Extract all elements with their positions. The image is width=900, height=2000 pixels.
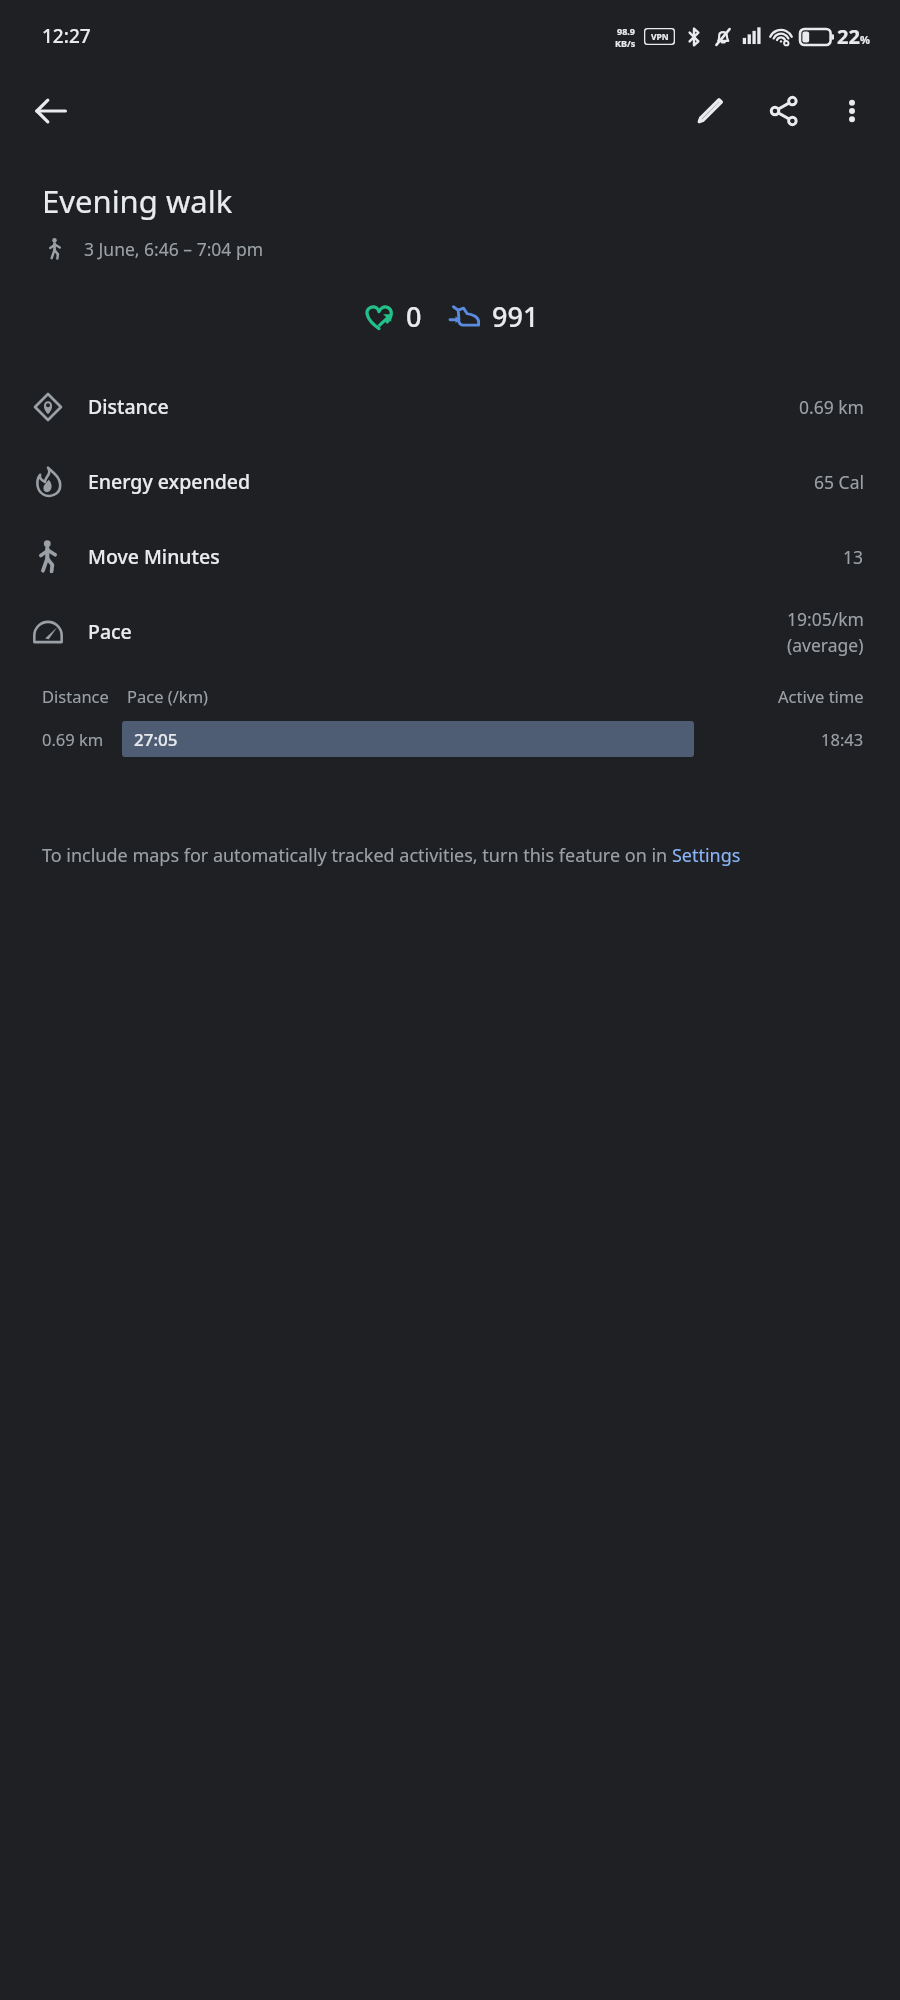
staticText: 0.69 km xyxy=(799,395,864,419)
staticText: Pace xyxy=(88,618,132,645)
staticText: 98.9 xyxy=(617,25,635,37)
button[interactable]: Distance xyxy=(0,369,900,444)
button[interactable]: Pace xyxy=(0,594,900,669)
staticText: 991 xyxy=(492,298,539,335)
staticText: 18:43 xyxy=(821,728,864,750)
staticText: 12:27 xyxy=(42,23,91,49)
button[interactable]: Move Minutes xyxy=(0,519,900,594)
staticText: 13 xyxy=(843,545,864,569)
staticText: Distance xyxy=(88,393,169,420)
button[interactable]: To include maps for automatically tracke… xyxy=(42,843,741,868)
staticText: 27:05 xyxy=(134,728,178,751)
staticText: 0 xyxy=(406,298,422,335)
staticText: (average) xyxy=(787,633,864,657)
staticText: 0.69 km xyxy=(42,728,104,750)
staticText: 65 Cal xyxy=(814,470,864,494)
staticText: 19:05/km xyxy=(787,607,864,631)
staticText: Energy expended xyxy=(88,468,251,495)
staticText: Distance xyxy=(42,685,109,707)
button[interactable]: More options xyxy=(826,85,878,137)
staticText: Pace (/km) xyxy=(127,685,209,707)
button[interactable]: Back xyxy=(26,86,76,136)
button[interactable]: Edit xyxy=(684,85,736,137)
button[interactable]: Share xyxy=(758,85,810,137)
staticText: VPN xyxy=(651,31,669,43)
staticText: 22 xyxy=(837,23,860,50)
staticText: Active time xyxy=(778,685,864,707)
button[interactable]: Energy expended xyxy=(0,444,900,519)
staticText: 3 June, 6:46 – 7:04 pm xyxy=(84,237,264,261)
staticText: KB/s xyxy=(615,37,636,49)
staticText: % xyxy=(860,32,870,47)
staticText: Move Minutes xyxy=(88,543,220,570)
staticText: Evening walk xyxy=(42,180,233,222)
